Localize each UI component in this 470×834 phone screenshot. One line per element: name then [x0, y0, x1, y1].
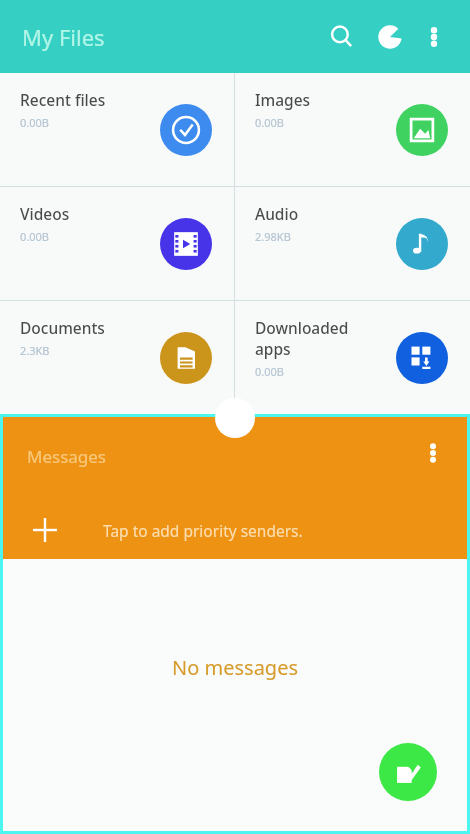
button[interactable]: Audio	[235, 187, 470, 300]
staticText: Recent files	[20, 89, 106, 110]
button[interactable]: Images	[235, 73, 470, 186]
staticText: No messages	[172, 654, 299, 681]
button[interactable]: Resize split screen	[215, 398, 255, 438]
staticText: Audio	[255, 203, 299, 224]
staticText: Messages	[27, 445, 107, 468]
staticText: Tap to add priority senders.	[103, 520, 303, 541]
staticText: Images	[255, 89, 311, 110]
staticText: 0.00B	[255, 364, 284, 379]
staticText: My Files	[22, 22, 105, 52]
button[interactable]: Compose message	[379, 743, 437, 801]
button[interactable]: Search	[318, 13, 366, 61]
staticText: Documents	[20, 317, 105, 338]
staticText: 2.98KB	[255, 229, 291, 244]
button[interactable]: Recent files	[0, 73, 234, 186]
button[interactable]: Storage analysis	[366, 13, 414, 61]
staticText: 0.00B	[255, 115, 284, 130]
staticText: 0.00B	[20, 115, 49, 130]
staticText: Downloaded apps	[255, 317, 367, 359]
button[interactable]: Videos	[0, 187, 234, 300]
button[interactable]: More options	[414, 17, 454, 57]
button[interactable]: Tap to add priority senders.	[3, 501, 467, 559]
staticText: 0.00B	[20, 229, 49, 244]
button[interactable]: Messages options	[413, 433, 453, 473]
staticText: 2.3KB	[20, 343, 50, 358]
button[interactable]: Documents	[0, 301, 234, 414]
button[interactable]: Downloaded apps	[235, 301, 470, 414]
staticText: Videos	[20, 203, 70, 224]
